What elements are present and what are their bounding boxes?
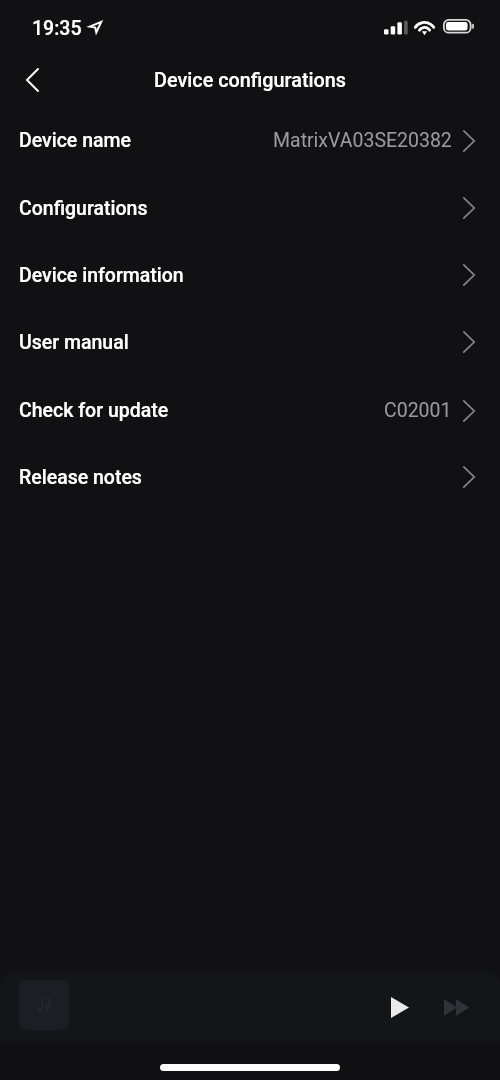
staticText: User manual [19,331,129,354]
staticText: Release notes [19,466,142,489]
button[interactable]: User manual [0,308,500,376]
button[interactable] [0,971,500,1043]
button[interactable]: Device name [0,106,500,174]
staticText: Check for update [19,399,169,422]
button[interactable]: Configurations [0,174,500,242]
staticText: 19:35 [32,17,82,40]
button[interactable]: Device information [0,241,500,309]
staticText: Device information [19,264,184,287]
button[interactable]: Play [380,987,420,1027]
staticText: MatrixVA03SE20382 [273,129,452,152]
button[interactable]: Back [10,58,54,102]
button[interactable]: Next track [436,987,476,1027]
staticText: C02001 [384,399,452,422]
staticText: Configurations [19,197,148,220]
button[interactable]: Release notes [0,443,500,511]
button[interactable]: Check for update [0,376,500,444]
staticText: Device configurations [154,69,346,92]
staticText: Device name [19,129,131,152]
